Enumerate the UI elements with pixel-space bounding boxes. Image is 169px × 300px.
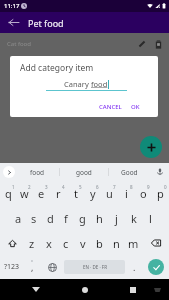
button[interactable]: l <box>142 206 159 231</box>
button[interactable]: Switch keyboard <box>148 279 167 300</box>
staticText: u <box>106 186 113 201</box>
button[interactable]: o <box>135 181 152 206</box>
button[interactable]: CANCEL <box>97 101 124 113</box>
staticText: d <box>47 211 54 226</box>
button[interactable]: x <box>40 231 57 255</box>
button[interactable]: h <box>91 206 108 231</box>
button[interactable]: EN · DE · FR <box>64 260 125 274</box>
staticText: Pet food <box>28 17 64 29</box>
staticText: Add category item <box>20 62 94 74</box>
button[interactable]: u <box>101 181 118 206</box>
button[interactable]: k <box>125 206 142 231</box>
button[interactable]: q <box>0 181 16 206</box>
button[interactable]: Change language <box>40 255 64 279</box>
button[interactable]: . <box>125 255 143 279</box>
button[interactable]: Good <box>108 163 151 181</box>
button[interactable]: Home <box>72 279 97 300</box>
button[interactable]: , <box>24 255 40 279</box>
staticText: , <box>31 261 34 273</box>
button[interactable]: w <box>16 181 33 206</box>
button[interactable]: Edit <box>134 36 150 52</box>
staticText: r <box>56 186 61 201</box>
staticText: good <box>76 168 92 177</box>
staticText: h <box>96 211 103 226</box>
staticText: n <box>113 236 120 251</box>
staticText: v <box>80 236 86 251</box>
button[interactable]: i <box>118 181 135 206</box>
staticText: OK <box>131 103 140 111</box>
staticText: p <box>157 186 164 201</box>
button[interactable]: b <box>91 231 108 255</box>
button[interactable]: s <box>26 206 42 231</box>
staticText: 2 <box>28 184 31 190</box>
button[interactable]: Backspace <box>142 231 169 255</box>
button[interactable]: Voice input <box>151 163 169 181</box>
button[interactable]: good <box>59 163 108 181</box>
staticText: y <box>90 186 96 201</box>
staticText: c <box>63 236 69 251</box>
staticText: 8 <box>130 184 133 190</box>
staticText: 7 <box>113 184 116 190</box>
staticText: s <box>31 211 37 226</box>
staticText: 5 <box>79 184 82 190</box>
staticText: o <box>140 186 147 201</box>
button[interactable]: j <box>108 206 125 231</box>
staticText: Good <box>121 168 138 177</box>
staticText: t <box>74 186 78 201</box>
button[interactable]: Enter <box>143 255 169 279</box>
button[interactable]: Delete <box>150 36 166 52</box>
button[interactable]: Add <box>140 136 162 158</box>
button[interactable]: Back <box>0 12 26 33</box>
staticText: b <box>96 236 103 251</box>
button[interactable]: t <box>67 181 84 206</box>
button[interactable]: r <box>50 181 67 206</box>
button[interactable]: v <box>74 231 91 255</box>
staticText: x <box>46 236 52 251</box>
staticText: food <box>30 168 45 177</box>
staticText: e <box>38 186 45 201</box>
button[interactable]: More suggestions <box>3 166 15 178</box>
button[interactable]: Back <box>23 279 48 300</box>
staticText: m <box>128 236 139 251</box>
staticText: . <box>133 261 136 273</box>
button[interactable]: n <box>108 231 125 255</box>
staticText: CANCEL <box>99 103 122 111</box>
button[interactable]: d <box>42 206 58 231</box>
button[interactable]: ?123 <box>0 255 24 279</box>
button[interactable]: Shift <box>0 231 24 255</box>
staticText: 3 <box>45 184 48 190</box>
staticText: k <box>131 211 137 226</box>
staticText: Canary <box>64 79 91 89</box>
staticText: 6 <box>96 184 99 190</box>
staticText: z <box>29 236 35 251</box>
button[interactable]: a <box>10 206 26 231</box>
staticText: w <box>20 186 29 201</box>
staticText: q <box>5 186 12 201</box>
staticText: 0 <box>164 184 167 190</box>
staticText: ?123 <box>4 262 20 272</box>
staticText: f <box>64 211 68 226</box>
staticText: 4 <box>62 184 65 190</box>
button[interactable]: f <box>58 206 74 231</box>
button[interactable]: m <box>125 231 142 255</box>
staticText: g <box>79 211 86 226</box>
staticText: 9 <box>147 184 150 190</box>
button[interactable]: z <box>24 231 40 255</box>
staticText: ° <box>31 259 33 265</box>
button[interactable]: c <box>57 231 74 255</box>
button[interactable]: p <box>152 181 169 206</box>
button[interactable]: g <box>74 206 91 231</box>
button[interactable]: Recent apps <box>120 279 145 300</box>
staticText: 1 <box>12 184 15 190</box>
button[interactable]: e <box>33 181 50 206</box>
staticText: l <box>149 211 152 226</box>
staticText: food <box>91 79 108 89</box>
staticText: Cat food <box>7 40 31 48</box>
button[interactable]: y <box>84 181 101 206</box>
staticText: j <box>115 211 118 226</box>
staticText: EN · DE · FR <box>83 264 107 270</box>
button[interactable]: food <box>16 163 59 181</box>
button[interactable]: OK <box>129 101 142 113</box>
staticText: i <box>125 186 128 201</box>
staticText: 11:17 <box>4 2 20 10</box>
